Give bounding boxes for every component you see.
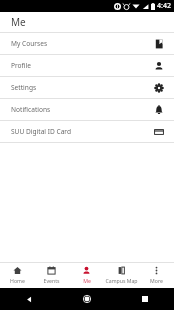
staticText: Home xyxy=(10,277,25,284)
staticText: Settings xyxy=(11,83,37,92)
button[interactable]: Back xyxy=(0,288,58,310)
button[interactable]: SUU Digital ID Card xyxy=(0,121,174,142)
staticText: Events xyxy=(43,277,60,284)
staticText: 4:42 xyxy=(157,1,171,11)
staticText: My Courses xyxy=(11,39,48,48)
staticText: SUU Digital ID Card xyxy=(11,127,72,136)
button[interactable]: Notifications xyxy=(0,99,174,120)
staticText: Notifications xyxy=(11,105,51,114)
button[interactable]: Events xyxy=(34,262,69,288)
button[interactable]: My Courses xyxy=(0,33,174,54)
staticText: Profile xyxy=(11,61,31,70)
staticText: Me xyxy=(83,277,91,284)
button[interactable]: Me xyxy=(69,262,104,288)
button[interactable]: Settings xyxy=(0,77,174,98)
button[interactable]: More xyxy=(139,262,174,288)
button[interactable]: Home xyxy=(58,288,116,310)
staticText: Campus Map xyxy=(105,277,138,284)
button[interactable]: Campus Map xyxy=(104,262,139,288)
staticText: More xyxy=(150,277,163,284)
button[interactable]: Profile xyxy=(0,55,174,76)
staticText: Me xyxy=(11,15,26,29)
button[interactable]: Recent apps xyxy=(116,288,174,310)
button[interactable]: Home xyxy=(0,262,34,288)
